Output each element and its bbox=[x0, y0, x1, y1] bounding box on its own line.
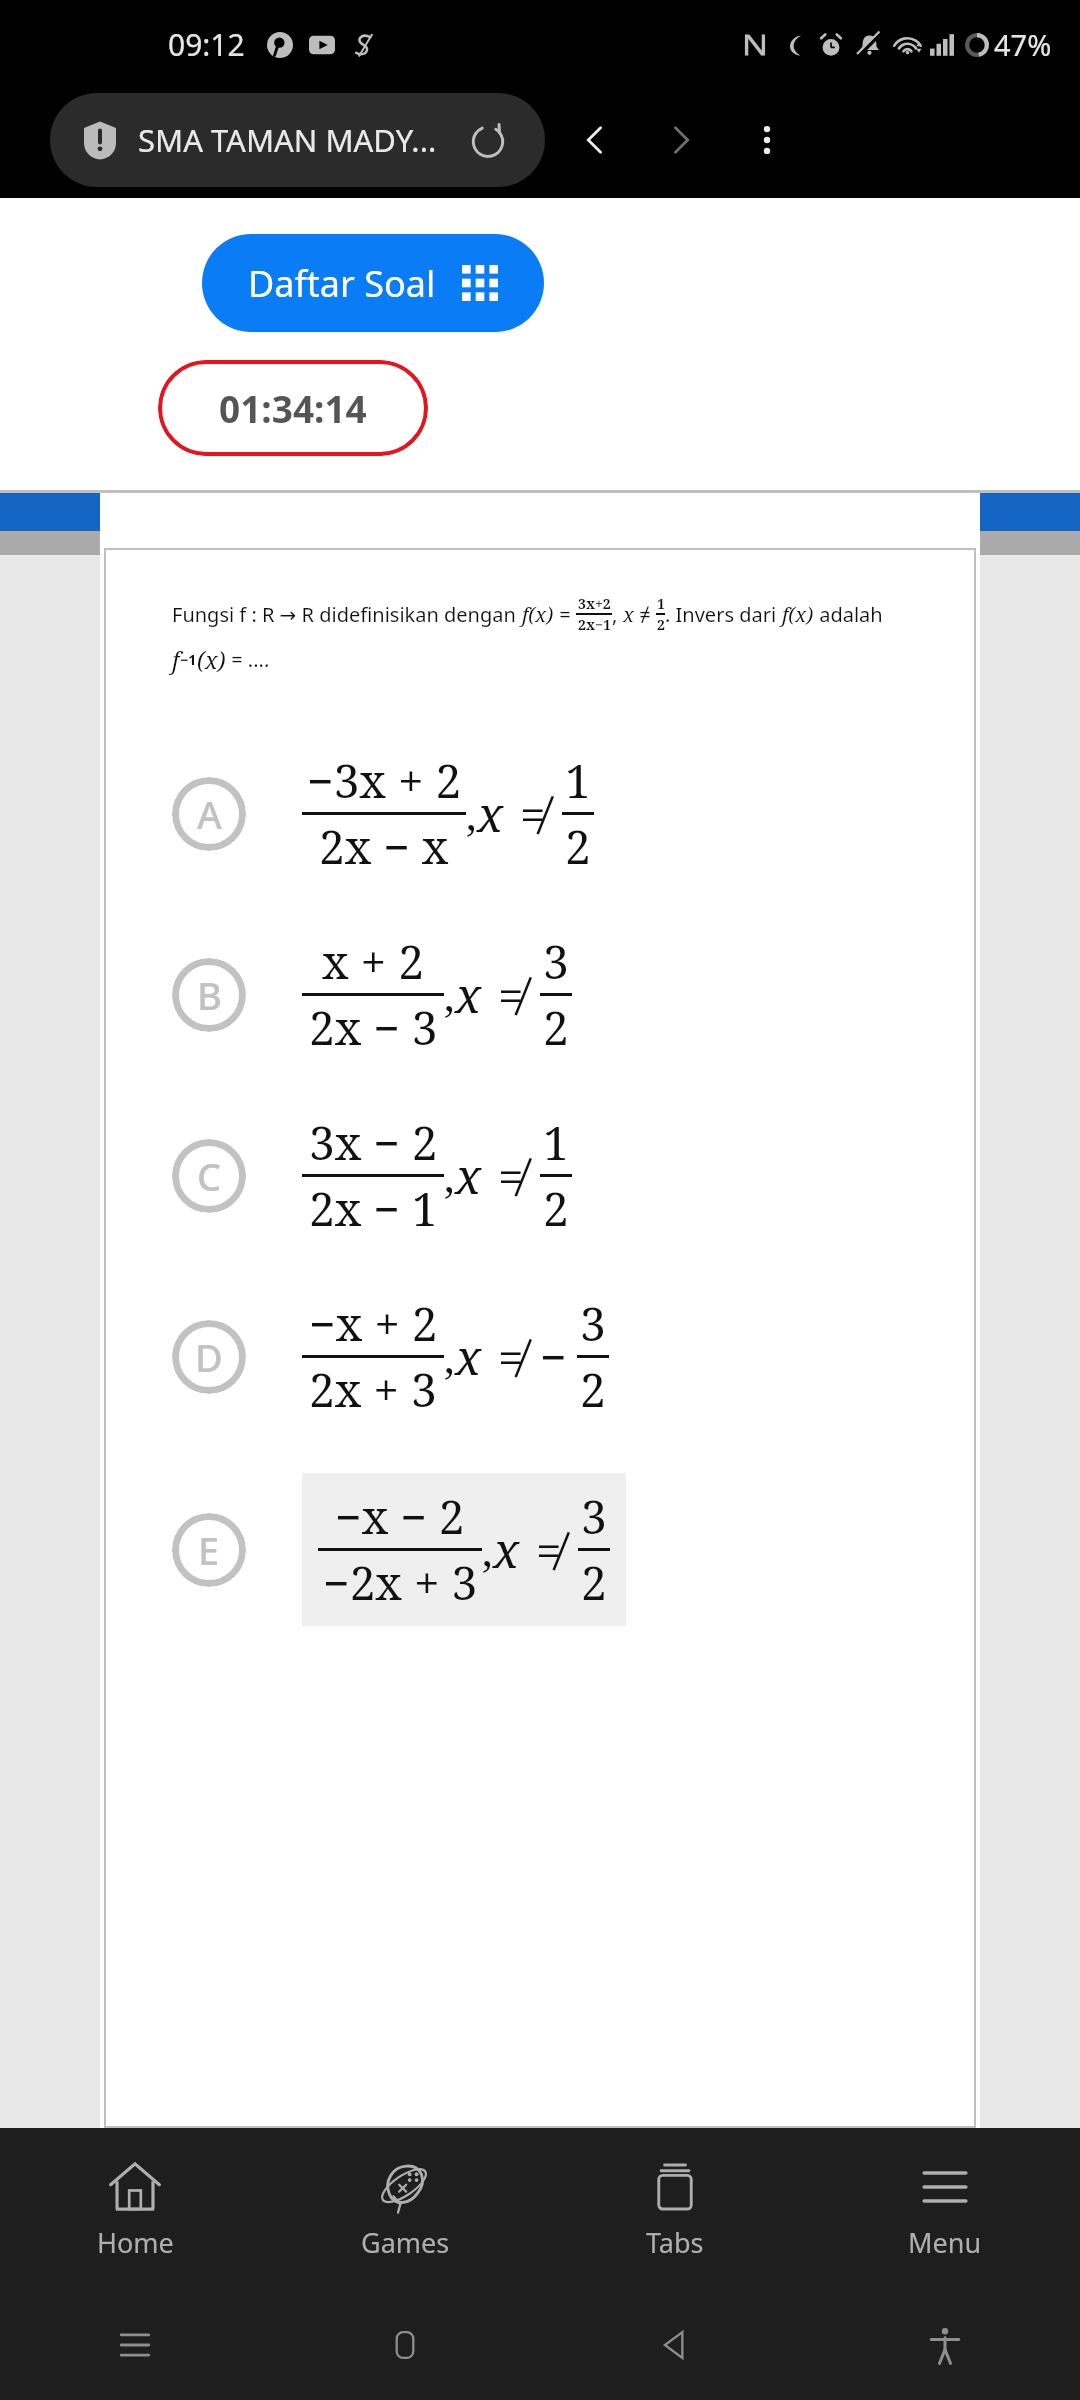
staticText: A bbox=[197, 788, 222, 840]
staticText: −3x + 2 bbox=[307, 749, 462, 812]
staticText: x bbox=[623, 601, 634, 628]
button[interactable]: B bbox=[104, 930, 976, 1059]
button[interactable]: Menu bbox=[810, 2128, 1080, 2290]
staticText: − bbox=[540, 1325, 567, 1388]
staticText: , bbox=[482, 1521, 493, 1578]
staticText: ≠ bbox=[498, 963, 524, 1026]
staticText: 3x − 2 bbox=[309, 1111, 438, 1174]
staticText: 2 bbox=[581, 1551, 607, 1614]
staticText: , bbox=[444, 1147, 455, 1204]
staticText: 1 bbox=[543, 1111, 569, 1174]
staticText: 2x + 3 bbox=[309, 1358, 437, 1421]
staticText: SMA TAMAN MADY... bbox=[138, 119, 437, 161]
staticText: 2 bbox=[657, 615, 665, 634]
button[interactable]: Games bbox=[270, 2128, 540, 2290]
button[interactable]: Home bbox=[270, 2290, 540, 2400]
button[interactable]: Forward bbox=[651, 110, 711, 170]
staticText: 2x − 1 bbox=[309, 1177, 438, 1240]
staticText: ≠ bbox=[520, 782, 546, 845]
button[interactable]: D bbox=[104, 1292, 976, 1421]
staticText: 2 bbox=[543, 996, 569, 1059]
button[interactable]: A bbox=[104, 749, 976, 878]
staticText: 3 bbox=[581, 1485, 607, 1548]
staticText: E bbox=[198, 1524, 220, 1576]
staticText: 2x−1 bbox=[578, 615, 611, 634]
staticText: −x − 2 bbox=[335, 1485, 465, 1548]
staticText: ≠ bbox=[498, 1325, 524, 1388]
staticText: x bbox=[493, 1517, 520, 1582]
staticText: x + 2 bbox=[322, 930, 424, 993]
staticText: f bbox=[172, 644, 180, 675]
button[interactable]: Daftar Soal bbox=[202, 234, 544, 332]
staticText: 2 bbox=[580, 1358, 606, 1421]
staticText: 2x − x bbox=[319, 815, 449, 878]
button[interactable]: Reload bbox=[461, 113, 515, 167]
staticText: 1 bbox=[565, 749, 591, 812]
staticText: −x + 2 bbox=[309, 1292, 438, 1355]
staticText: D bbox=[195, 1331, 223, 1383]
staticText: 2 bbox=[543, 1177, 569, 1240]
staticText: . Invers dari bbox=[665, 601, 782, 628]
button[interactable]: Back bbox=[540, 2290, 810, 2400]
staticText: 2 bbox=[565, 815, 591, 878]
staticText: −1 bbox=[180, 650, 197, 669]
staticText: = .... bbox=[226, 646, 270, 673]
staticText: x bbox=[455, 962, 482, 1027]
button[interactable]: Back bbox=[565, 110, 625, 170]
staticText: = bbox=[554, 601, 576, 628]
staticText: Daftar Soal bbox=[248, 259, 436, 308]
staticText: f(x) bbox=[782, 601, 814, 628]
button[interactable]: E bbox=[104, 1473, 976, 1626]
button[interactable]: More options bbox=[737, 110, 797, 170]
staticText: , bbox=[612, 601, 623, 628]
staticText: 3 bbox=[580, 1292, 606, 1355]
button[interactable]: 01:34:14 bbox=[158, 360, 428, 456]
staticText: ≠ bbox=[536, 1518, 562, 1581]
button[interactable]: C bbox=[104, 1111, 976, 1240]
staticText: x bbox=[455, 1143, 482, 1208]
staticText: x bbox=[477, 781, 504, 846]
staticText: −2x + 3 bbox=[323, 1551, 478, 1614]
staticText: Home bbox=[97, 2224, 174, 2261]
staticText: 47% bbox=[994, 25, 1052, 64]
staticText: x bbox=[455, 1324, 482, 1389]
staticText: 01:34:14 bbox=[219, 383, 367, 433]
staticText: Games bbox=[361, 2224, 450, 2261]
button[interactable]: SMA TAMAN MADY... bbox=[50, 93, 545, 187]
staticText: adalah bbox=[814, 601, 883, 628]
staticText: 2x − 3 bbox=[309, 996, 438, 1059]
staticText: (x) bbox=[197, 644, 226, 675]
staticText: 3x+2 bbox=[578, 594, 611, 613]
button[interactable]: Tabs bbox=[540, 2128, 810, 2290]
staticText: ≠ bbox=[634, 601, 656, 628]
staticText: ≠ bbox=[498, 1144, 524, 1207]
button[interactable]: Recents bbox=[0, 2290, 270, 2400]
staticText: Menu bbox=[908, 2224, 982, 2261]
button[interactable]: Accessibility bbox=[810, 2290, 1080, 2400]
staticText: f(x) bbox=[522, 601, 554, 628]
staticText: C bbox=[197, 1150, 222, 1202]
staticText: Tabs bbox=[646, 2224, 704, 2261]
staticText: Fungsi f : R → R didefinisikan dengan bbox=[172, 601, 522, 628]
staticText: 3 bbox=[543, 930, 569, 993]
button[interactable]: Home bbox=[0, 2128, 270, 2290]
staticText: 1 bbox=[657, 594, 665, 613]
staticText: 09:12 bbox=[168, 24, 245, 65]
staticText: , bbox=[466, 785, 477, 842]
staticText: B bbox=[197, 969, 222, 1021]
staticText: , bbox=[444, 1328, 455, 1385]
staticText: , bbox=[444, 966, 455, 1023]
